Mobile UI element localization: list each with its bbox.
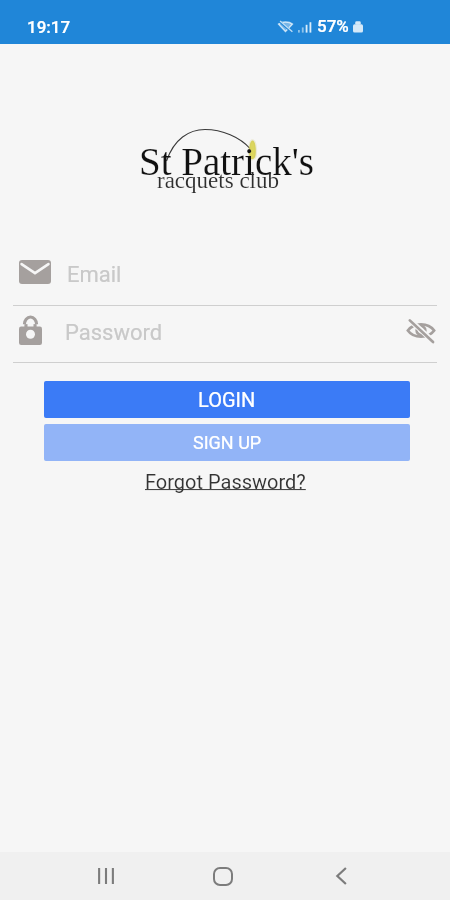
staticText: St Patrick's [139,140,314,183]
staticText: 57% [317,16,349,36]
button[interactable]: Home [199,852,247,900]
staticText: LOGIN [198,388,256,411]
button[interactable]: LOGIN [44,381,410,418]
staticText: SIGN UP [193,432,262,453]
button[interactable]: Forgot Password? [141,468,310,495]
button[interactable]: Show password [401,310,441,350]
staticText: racquets club [157,168,279,193]
button[interactable]: Back [317,852,365,900]
staticText: Email [67,262,122,288]
button[interactable]: Recent apps [82,852,130,900]
button[interactable]: Password [0,306,450,354]
button[interactable]: SIGN UP [44,424,410,461]
staticText: Password [65,320,163,346]
staticText: 19:17 [27,17,71,37]
button[interactable]: Email [0,248,450,296]
